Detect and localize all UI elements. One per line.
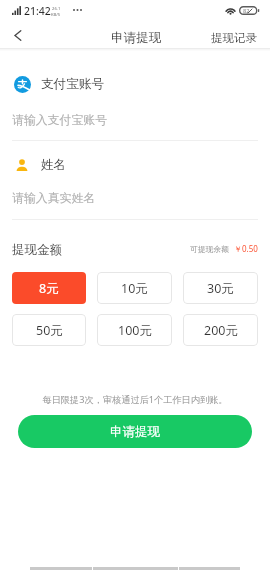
staticText: 100元 xyxy=(118,322,152,339)
staticText: ￥0.50 xyxy=(234,243,258,254)
staticText: 申请提现 xyxy=(111,30,162,46)
staticText: 可提现余额 xyxy=(190,244,229,254)
staticText: 申请提现 xyxy=(110,424,160,440)
staticText: 10元 xyxy=(121,280,148,297)
staticText: 每日限提3次，审核通过后1个工作日内到账。 xyxy=(0,393,270,406)
staticText: 提现金额 xyxy=(12,242,62,258)
staticText: 姓名 xyxy=(41,157,67,173)
staticText: 请输入真实姓名 xyxy=(12,191,96,206)
button[interactable]: 30元 xyxy=(183,272,258,304)
staticText: KB/S xyxy=(51,12,61,18)
button[interactable]: 200元 xyxy=(183,314,258,346)
button[interactable]: 8元 xyxy=(12,272,86,304)
staticText: 8元 xyxy=(39,280,59,297)
staticText: 支付宝账号 xyxy=(41,76,104,92)
staticText: 30元 xyxy=(207,280,234,297)
staticText: 26.1 xyxy=(52,6,61,12)
staticText: 21:42 xyxy=(24,4,51,18)
staticText: 50元 xyxy=(36,322,63,339)
button[interactable]: 50元 xyxy=(12,314,86,346)
staticText: 请输入支付宝账号 xyxy=(12,113,108,128)
button[interactable]: 100元 xyxy=(97,314,172,346)
button[interactable]: 申请提现 xyxy=(18,415,252,448)
staticText: 提现记录 xyxy=(211,31,257,45)
button[interactable]: 提现记录 xyxy=(211,31,257,45)
button[interactable]: Back xyxy=(0,22,36,49)
staticText: 82 xyxy=(243,7,250,15)
staticText: 200元 xyxy=(204,322,238,339)
button[interactable]: 10元 xyxy=(97,272,172,304)
